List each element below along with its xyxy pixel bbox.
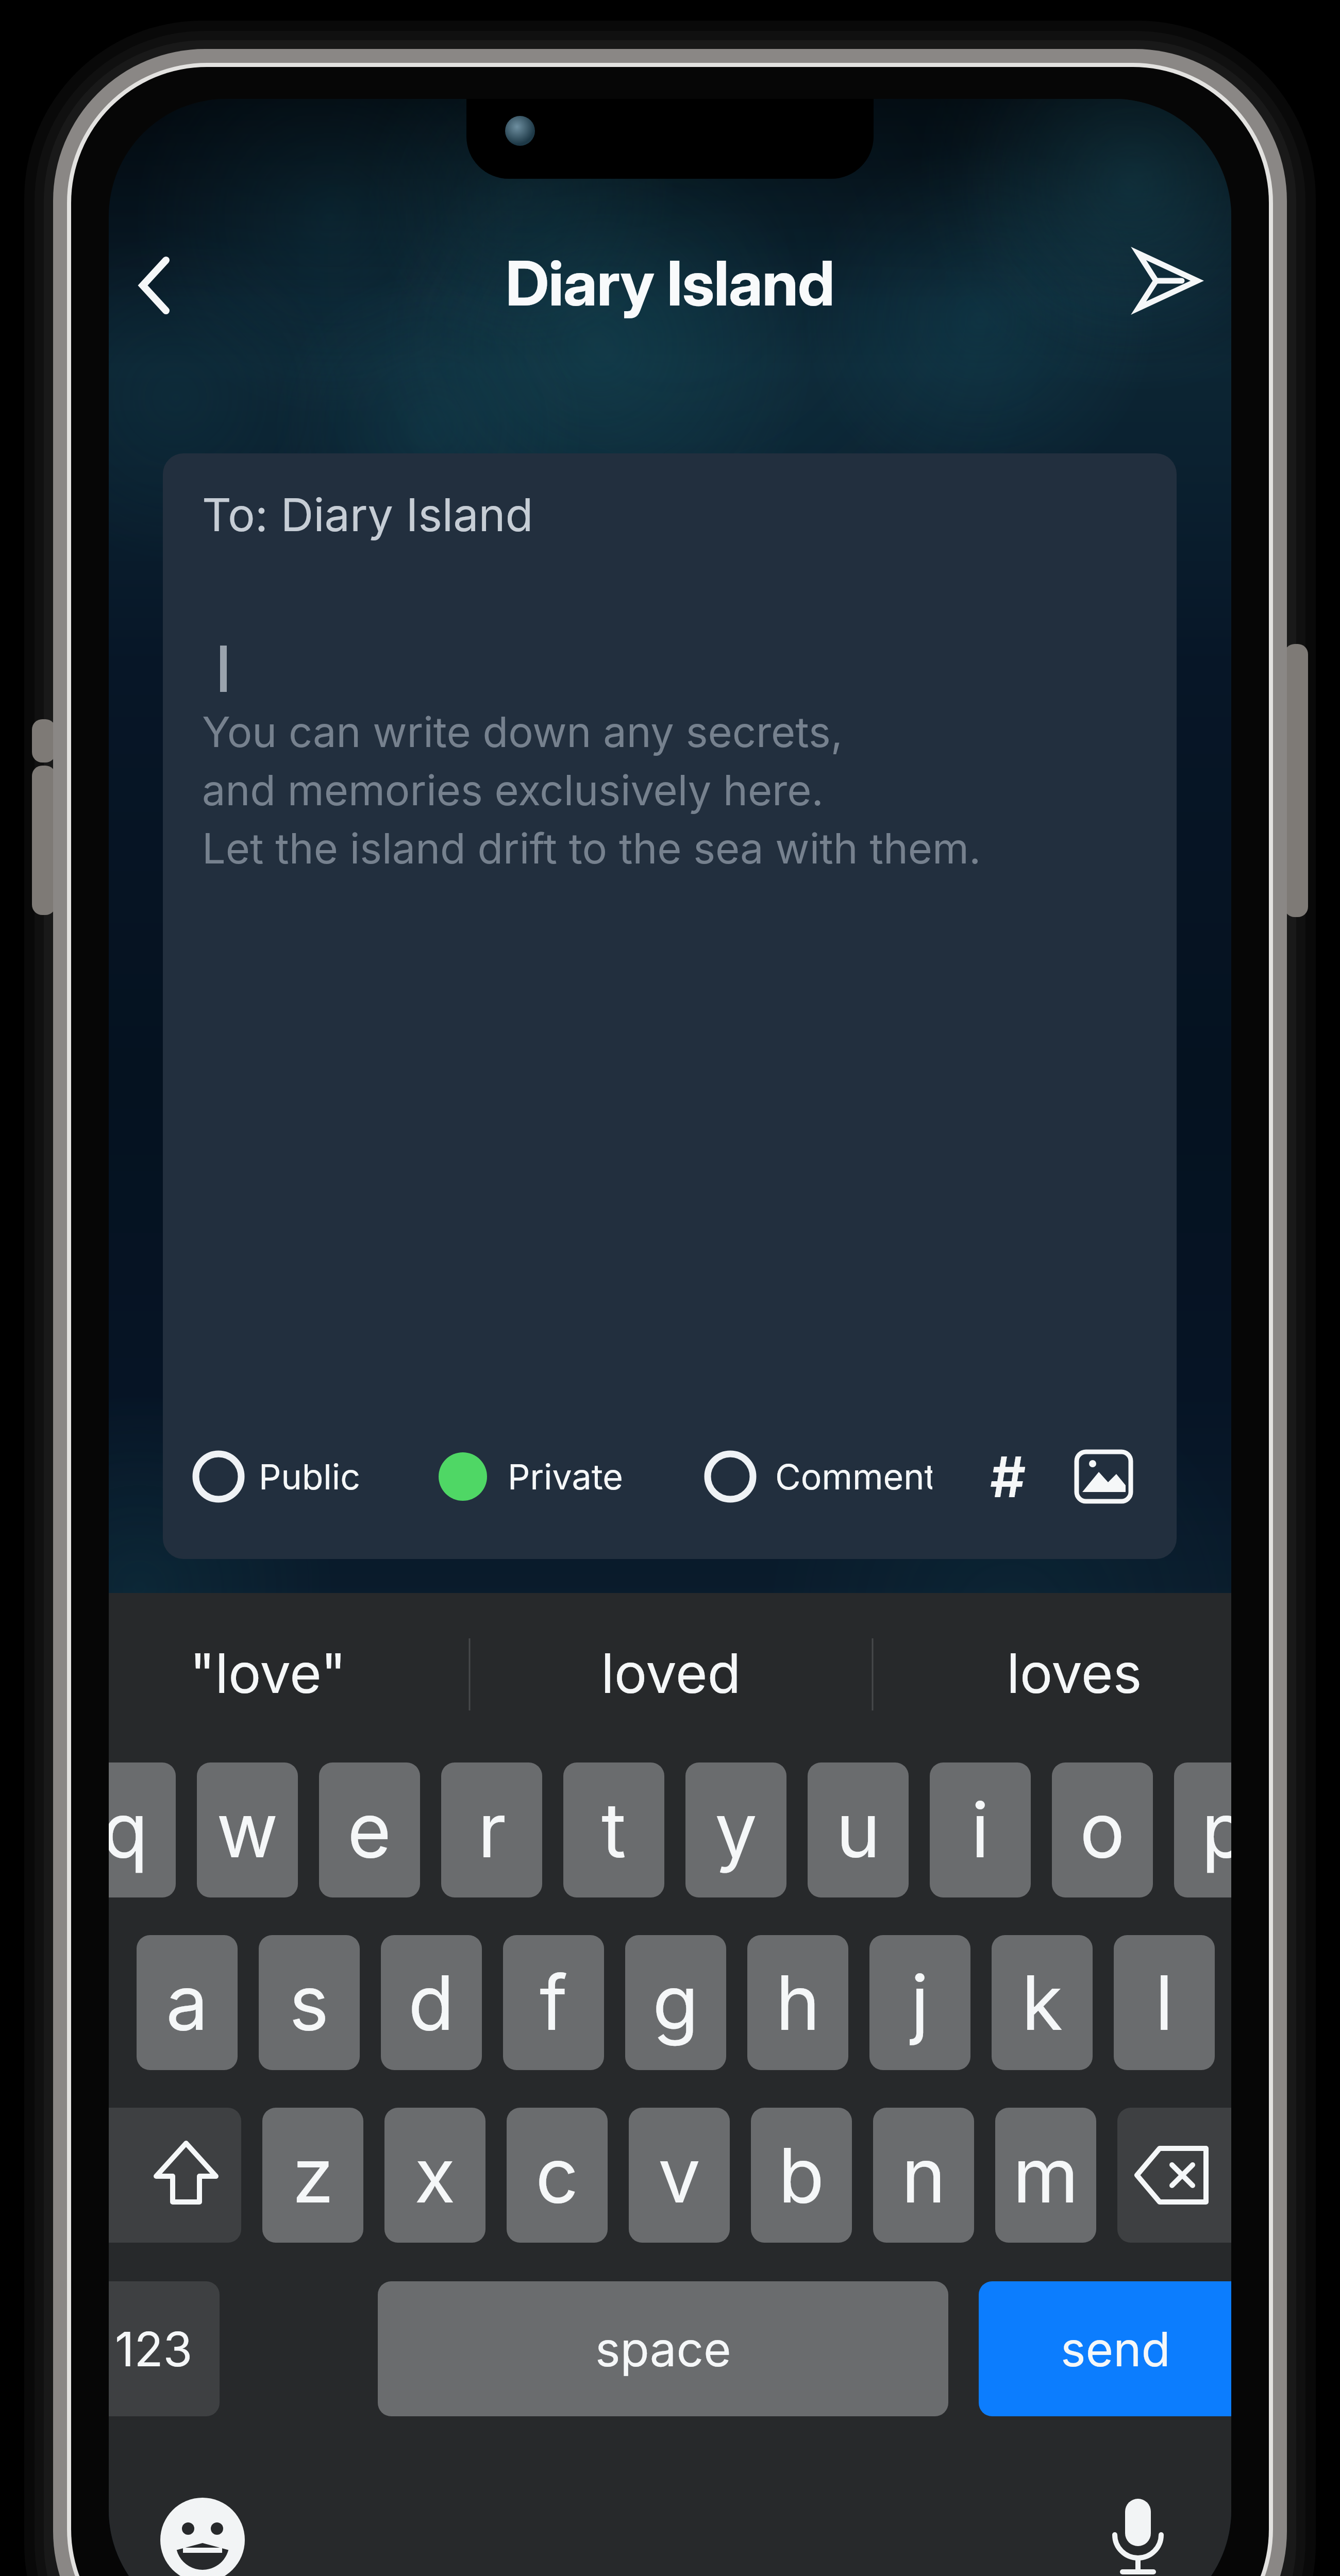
staticText: 123 xyxy=(115,2320,193,2378)
button[interactable]: s xyxy=(259,1935,360,2070)
button[interactable]: g xyxy=(625,1935,726,2070)
button[interactable]: e xyxy=(319,1762,420,1897)
button[interactable] xyxy=(109,2108,241,2243)
staticText: # xyxy=(990,1443,1026,1511)
button[interactable]: "love" xyxy=(124,1637,412,1709)
button[interactable]: loved xyxy=(527,1637,815,1709)
staticText: b xyxy=(778,2130,825,2221)
staticText: i xyxy=(971,1785,990,1876)
button[interactable]: h xyxy=(747,1935,848,2070)
button[interactable]: j xyxy=(869,1935,970,2070)
staticText: loves xyxy=(1007,1640,1142,1706)
button[interactable]: k xyxy=(992,1935,1093,2070)
button[interactable] xyxy=(124,253,186,317)
button[interactable]: loves xyxy=(930,1637,1218,1709)
staticText: "love" xyxy=(190,1640,346,1706)
staticText: p xyxy=(1201,1785,1231,1876)
button[interactable]: a xyxy=(137,1935,238,2070)
staticText: You can write down any secrets, and memo… xyxy=(202,707,981,874)
button[interactable]: send xyxy=(979,2281,1231,2416)
button[interactable] xyxy=(1119,241,1209,323)
button[interactable]: u xyxy=(808,1762,909,1897)
button[interactable] xyxy=(1070,1438,1138,1515)
staticText: c xyxy=(535,2130,579,2221)
staticText: send xyxy=(1061,2320,1170,2378)
staticText: Comment xyxy=(775,1455,932,1498)
button[interactable]: Comment xyxy=(695,1440,963,1513)
staticText: x xyxy=(414,2130,456,2221)
button[interactable]: o xyxy=(1052,1762,1153,1897)
button[interactable]: Private xyxy=(428,1440,644,1513)
button[interactable]: l xyxy=(1114,1935,1215,2070)
button[interactable]: x xyxy=(384,2108,485,2243)
button[interactable]: # xyxy=(969,1438,1047,1515)
staticText: q xyxy=(109,1785,148,1876)
button[interactable]: d xyxy=(381,1935,482,2070)
staticText: f xyxy=(540,1957,568,2048)
button[interactable]: t xyxy=(563,1762,664,1897)
button[interactable]: r xyxy=(441,1762,542,1897)
button[interactable]: z xyxy=(262,2108,363,2243)
staticText: Private xyxy=(508,1455,623,1498)
staticText: m xyxy=(1013,2130,1079,2221)
staticText: z xyxy=(292,2130,334,2221)
staticText: loved xyxy=(601,1640,741,1706)
button[interactable]: w xyxy=(197,1762,298,1897)
staticText: t xyxy=(601,1785,626,1876)
button[interactable] xyxy=(1117,2108,1231,2243)
staticText: v xyxy=(658,2130,701,2221)
staticText: l xyxy=(1155,1957,1174,2048)
staticText: d xyxy=(408,1957,455,2048)
button[interactable]: f xyxy=(503,1935,604,2070)
button[interactable]: Public xyxy=(183,1440,390,1513)
button[interactable]: v xyxy=(629,2108,730,2243)
button[interactable]: b xyxy=(751,2108,852,2243)
staticText: Diary Island xyxy=(506,246,834,320)
staticText: Public xyxy=(259,1455,361,1498)
staticText: To: Diary Island xyxy=(202,487,533,542)
staticText: g xyxy=(652,1957,699,2048)
button[interactable]: q xyxy=(109,1762,176,1897)
staticText: y xyxy=(715,1785,758,1876)
staticText: r xyxy=(478,1785,506,1876)
button[interactable] xyxy=(1096,2494,1180,2576)
button[interactable]: i xyxy=(930,1762,1031,1897)
button[interactable]: p xyxy=(1174,1762,1231,1897)
staticText: space xyxy=(595,2320,731,2378)
staticText: n xyxy=(901,2130,946,2221)
button[interactable]: 123 xyxy=(109,2281,220,2416)
staticText: s xyxy=(289,1957,329,2048)
button[interactable]: n xyxy=(873,2108,974,2243)
staticText: e xyxy=(347,1785,392,1876)
staticText: w xyxy=(216,1785,278,1876)
staticText: j xyxy=(911,1957,929,2048)
button[interactable]: m xyxy=(995,2108,1096,2243)
staticText: a xyxy=(166,1957,208,2048)
staticText: k xyxy=(1021,1957,1063,2048)
staticText: h xyxy=(776,1957,820,2048)
button[interactable]: y xyxy=(685,1762,786,1897)
staticText: o xyxy=(1080,1785,1125,1876)
button[interactable]: c xyxy=(507,2108,608,2243)
staticText: u xyxy=(836,1785,881,1876)
button[interactable] xyxy=(160,2498,245,2576)
button[interactable]: space xyxy=(378,2281,948,2416)
